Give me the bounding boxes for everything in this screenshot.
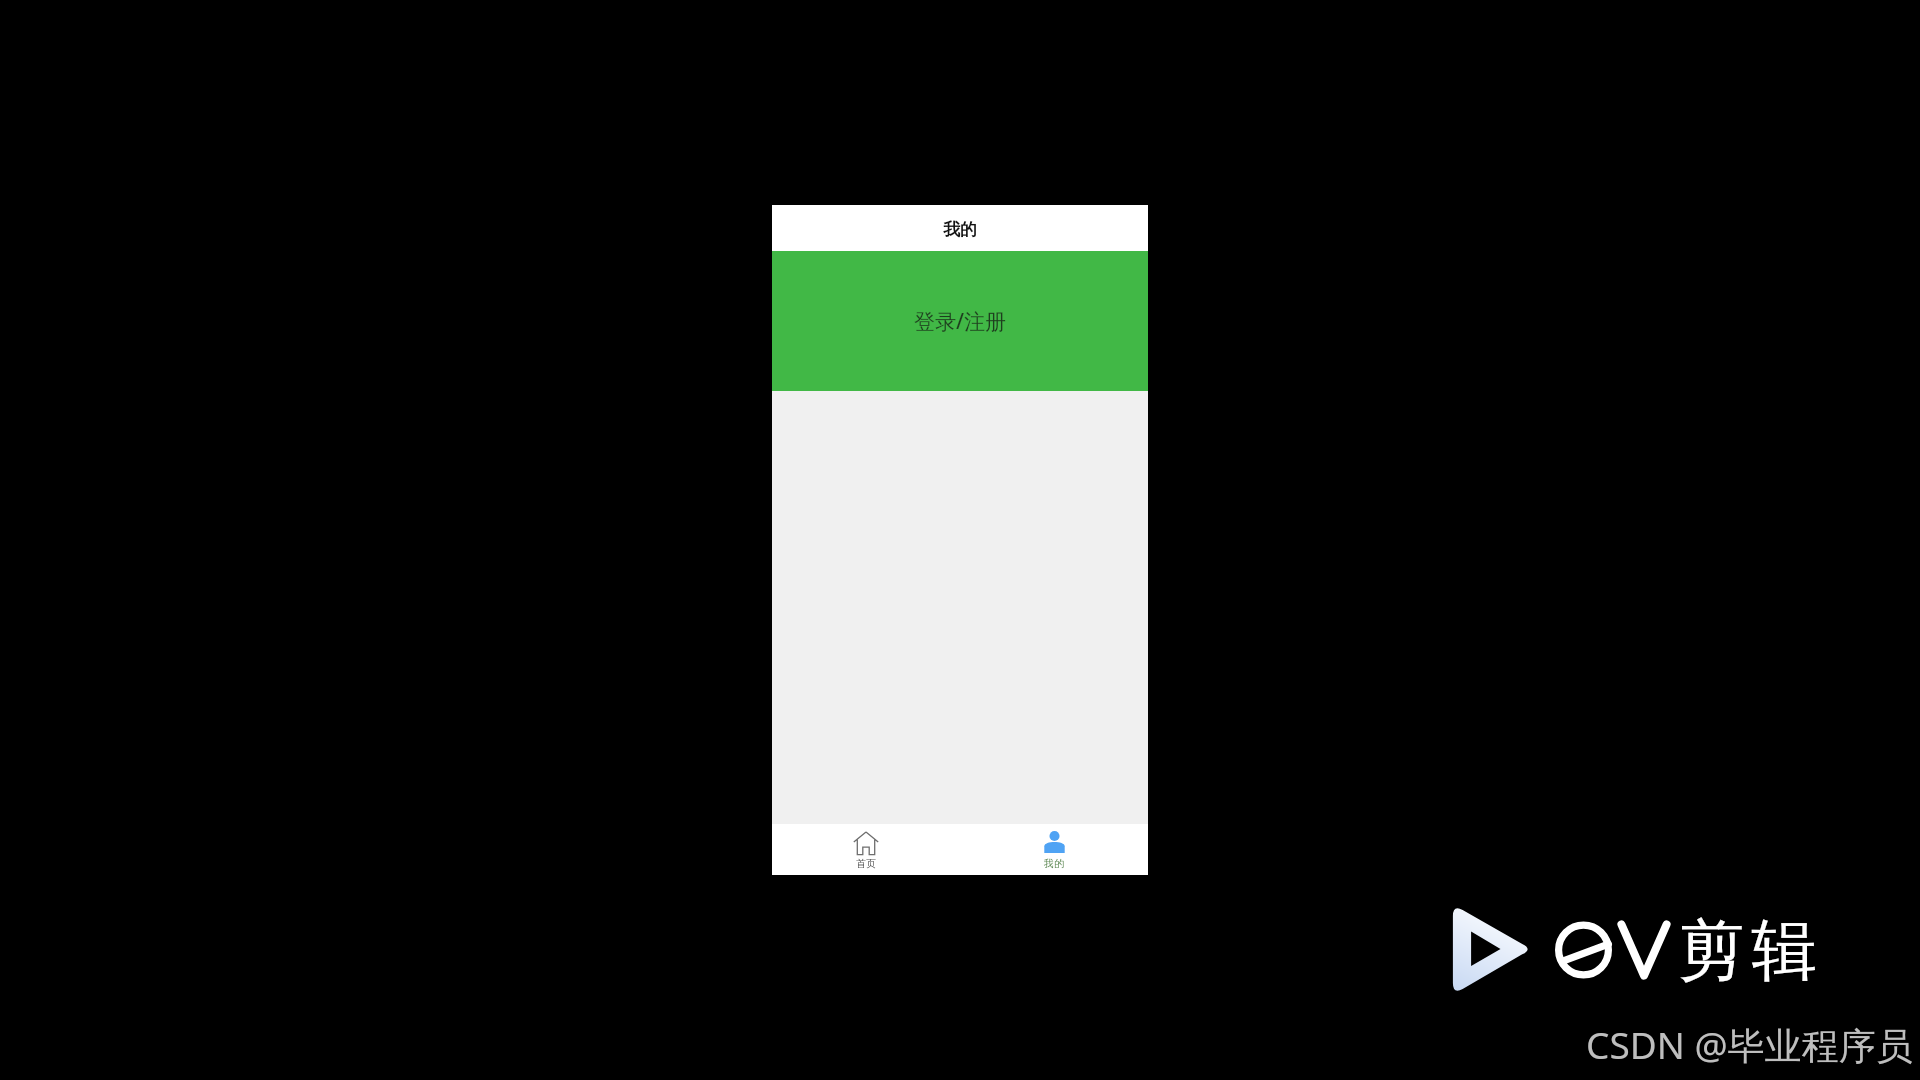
staticText: CSDN @毕业程序员 bbox=[1586, 1019, 1913, 1070]
staticText: 登录/注册 bbox=[914, 307, 1007, 336]
staticText: 我的 bbox=[1044, 857, 1064, 870]
staticText: 我的 bbox=[943, 219, 977, 240]
other: Profile bbox=[1044, 831, 1065, 855]
button[interactable]: 登录/注册 bbox=[772, 251, 1148, 391]
staticText: 首页 bbox=[856, 857, 876, 870]
button[interactable]: Profile bbox=[960, 824, 1148, 875]
staticText: 剪辑 bbox=[1675, 909, 1821, 992]
other: Home bbox=[853, 831, 879, 855]
button[interactable]: Home bbox=[772, 824, 960, 875]
